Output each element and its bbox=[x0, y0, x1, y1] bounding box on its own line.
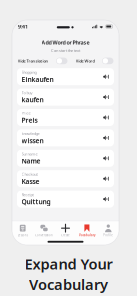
button[interactable]: Shopping bbox=[17, 68, 114, 85]
staticText: Profile bbox=[103, 233, 113, 237]
staticText: Hide Word bbox=[75, 58, 94, 63]
button[interactable]: Create bbox=[55, 221, 76, 238]
button[interactable]: Receipt bbox=[17, 191, 114, 208]
staticText: Vocabulary bbox=[79, 233, 95, 237]
button[interactable]: Toggle bbox=[102, 58, 113, 64]
button[interactable]: knowledge bbox=[17, 129, 114, 146]
staticText: knowledge bbox=[21, 131, 39, 136]
staticText: Surname bbox=[21, 151, 37, 156]
staticText: Vocabulary bbox=[29, 274, 108, 294]
button[interactable]: Checkout bbox=[17, 170, 114, 187]
staticText: wissen bbox=[21, 136, 43, 145]
button[interactable]: Conversation bbox=[33, 221, 55, 238]
button[interactable]: Surname bbox=[17, 150, 114, 167]
staticText: kaufen bbox=[21, 95, 43, 104]
staticText: Conversation bbox=[35, 233, 53, 237]
staticText: Hide Translation bbox=[17, 58, 48, 63]
staticText: Checkout bbox=[21, 172, 37, 177]
staticText: Preis bbox=[21, 116, 37, 125]
button[interactable]: Price bbox=[17, 109, 114, 126]
staticText: Quittung bbox=[21, 197, 50, 206]
staticText: To buy bbox=[21, 90, 32, 95]
staticText: Add Word or Phrase bbox=[41, 39, 89, 46]
staticText: Price bbox=[21, 110, 30, 116]
staticText: Receipt bbox=[21, 192, 33, 197]
staticText: Kasse bbox=[21, 177, 39, 186]
button[interactable]: To buy bbox=[17, 89, 114, 106]
button[interactable]: Lessons bbox=[12, 221, 33, 238]
button[interactable]: Toggle bbox=[56, 58, 67, 64]
staticText: Name bbox=[21, 156, 40, 165]
staticText: Can start the text bbox=[51, 48, 80, 53]
staticText: Shopping bbox=[21, 70, 36, 75]
staticText: 9:41 bbox=[18, 23, 28, 30]
staticText: Create bbox=[61, 233, 70, 237]
button[interactable]: Profile bbox=[98, 221, 119, 238]
button[interactable]: Vocabulary bbox=[76, 221, 98, 238]
staticText: Expand Your bbox=[24, 254, 112, 273]
staticText: Einkaufen bbox=[21, 75, 53, 84]
staticText: Lessons bbox=[18, 233, 28, 237]
button[interactable]: Add Word or Phrase bbox=[41, 39, 89, 46]
